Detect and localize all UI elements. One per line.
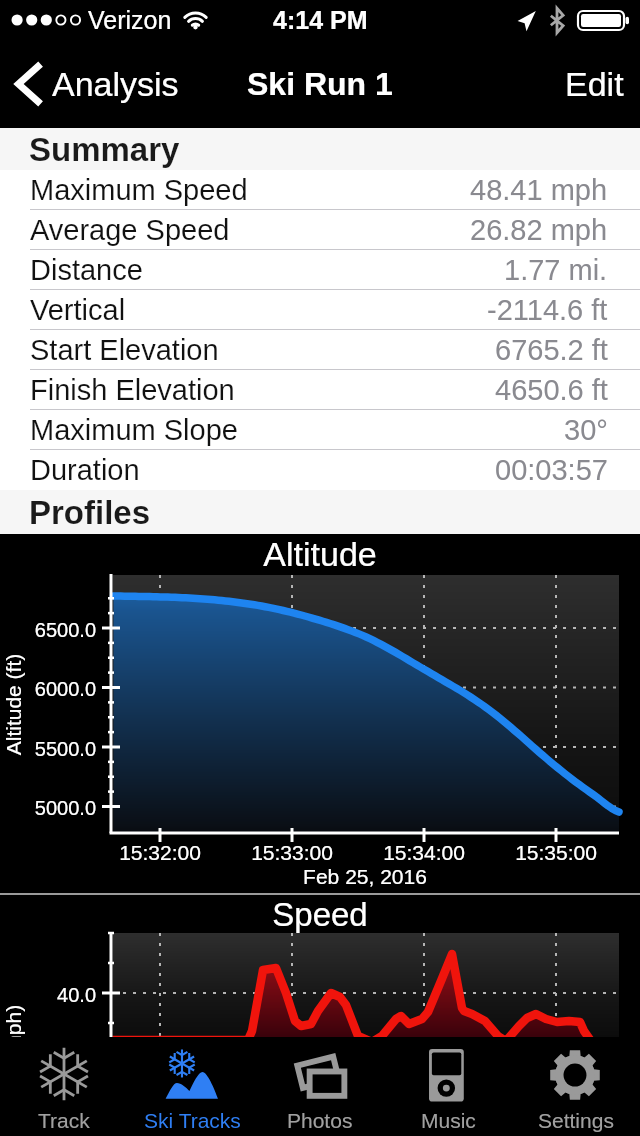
button[interactable]: Distance <box>0 250 640 290</box>
staticText: Music <box>421 1109 476 1132</box>
staticText: 4650.6 ft <box>495 374 608 406</box>
button[interactable]: Photos <box>256 1037 384 1136</box>
staticText: Speed (mph) <box>1 975 24 1136</box>
staticText: Ski Run 1 <box>247 66 393 102</box>
staticText: Edit <box>565 65 624 103</box>
staticText: 1.77 mi. <box>504 254 608 286</box>
staticText: 6000.0 <box>0 678 96 700</box>
staticText: Photos <box>287 1109 353 1132</box>
staticText: 15:32:00 <box>80 841 240 864</box>
staticText: Vertical <box>30 294 126 326</box>
button[interactable]: Music <box>384 1037 512 1136</box>
staticText: 6500.0 <box>0 619 96 641</box>
staticText: Speed <box>0 896 640 933</box>
staticText: 6765.2 ft <box>495 334 608 366</box>
staticText: 4:14 PM <box>273 6 368 34</box>
staticText: Feb 25, 2016 <box>245 865 485 888</box>
staticText: -2114.6 ft <box>487 294 608 326</box>
staticText: Maximum Slope <box>30 414 238 446</box>
button[interactable]: Settings <box>512 1037 640 1136</box>
staticText: Distance <box>30 254 143 286</box>
button[interactable]: Start Elevation <box>0 330 640 370</box>
staticText: 40.0 <box>0 984 96 1006</box>
staticText: Ski Tracks <box>144 1109 241 1132</box>
button[interactable]: Duration <box>0 450 640 490</box>
staticText: 48.41 mph <box>470 174 608 206</box>
staticText: 15:34:00 <box>344 841 504 864</box>
button[interactable]: Maximum Speed <box>0 170 640 210</box>
button[interactable]: Maximum Slope <box>0 410 640 450</box>
button[interactable]: Vertical <box>0 290 640 330</box>
button[interactable]: Analysis <box>0 40 193 128</box>
staticText: Track <box>38 1109 90 1132</box>
staticText: 5500.0 <box>0 738 96 760</box>
staticText: Average Speed <box>30 214 230 246</box>
staticText: Start Elevation <box>30 334 219 366</box>
staticText: Finish Elevation <box>30 374 235 406</box>
staticText: Verizon <box>88 6 172 34</box>
staticText: Analysis <box>52 65 179 103</box>
staticText: 00:03:57 <box>495 454 608 486</box>
staticText: Altitude <box>0 535 640 573</box>
button[interactable]: Ski Tracks <box>128 1037 256 1136</box>
staticText: 15:33:00 <box>212 841 372 864</box>
staticText: Summary <box>29 131 180 168</box>
staticText: Duration <box>30 454 140 486</box>
button[interactable]: Finish Elevation <box>0 370 640 410</box>
button[interactable]: Edit <box>549 40 640 128</box>
staticText: Altitude (ft) <box>1 614 24 794</box>
staticText: 5000.0 <box>0 797 96 819</box>
staticText: 26.82 mph <box>470 214 608 246</box>
button[interactable]: Track <box>0 1037 128 1136</box>
staticText: 30° <box>564 414 608 446</box>
staticText: 15:35:00 <box>476 841 636 864</box>
staticText: Maximum Speed <box>30 174 248 206</box>
button[interactable]: Average Speed <box>0 210 640 250</box>
staticText: Settings <box>538 1109 614 1132</box>
staticText: Profiles <box>29 494 151 531</box>
